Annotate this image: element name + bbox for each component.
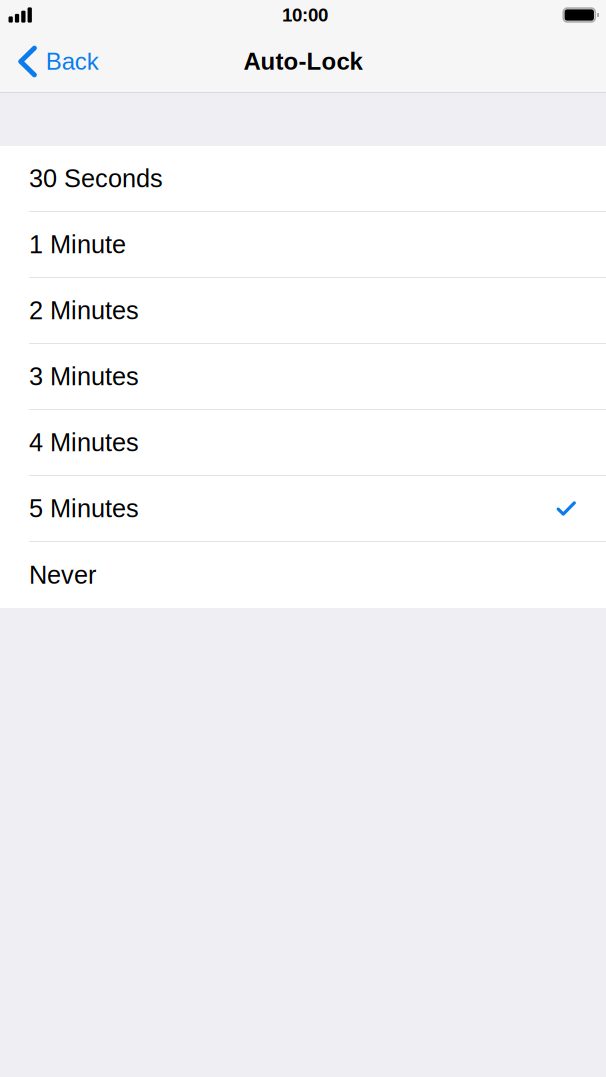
staticText: 1 Minute xyxy=(29,230,126,259)
button[interactable]: 30 Seconds xyxy=(0,146,606,212)
staticText: Never xyxy=(29,561,96,589)
staticText: 5 Minutes xyxy=(29,494,139,523)
button[interactable]: Back xyxy=(0,38,111,85)
staticText: Back xyxy=(46,48,99,75)
staticText: 10:00 xyxy=(282,5,328,25)
button[interactable]: 1 Minute xyxy=(0,212,606,278)
staticText: 4 Minutes xyxy=(29,428,139,457)
staticText: 3 Minutes xyxy=(29,362,139,391)
staticText: 30 Seconds xyxy=(29,164,163,193)
staticText: 2 Minutes xyxy=(29,296,139,325)
button[interactable]: 3 Minutes xyxy=(0,344,606,410)
staticText: Auto-Lock xyxy=(243,48,362,75)
button[interactable]: Never xyxy=(0,542,606,608)
button[interactable]: 2 Minutes xyxy=(0,278,606,344)
button[interactable]: 5 Minutes, selected xyxy=(0,476,606,542)
button[interactable]: 4 Minutes xyxy=(0,410,606,476)
